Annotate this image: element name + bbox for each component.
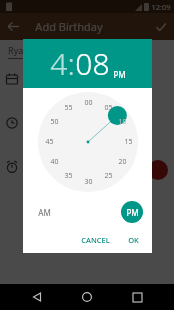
staticText: 10	[118, 117, 127, 127]
button[interactable]: Back	[24, 284, 50, 310]
staticText: 25	[104, 171, 113, 181]
other: Time	[6, 117, 18, 129]
staticText: AM	[38, 207, 51, 218]
button[interactable]: Time	[6, 115, 174, 131]
staticText: PM	[113, 69, 126, 80]
staticText: 08	[75, 43, 110, 84]
button[interactable]: Date	[6, 71, 174, 87]
button[interactable]: Alarm	[6, 159, 174, 175]
button[interactable]: Save	[147, 13, 174, 40]
staticText: OK	[128, 235, 139, 245]
button[interactable]: PM	[121, 201, 143, 223]
staticText: Ryan	[8, 44, 29, 56]
staticText: 45	[45, 137, 54, 147]
other: Date	[6, 73, 18, 85]
button[interactable]: Home	[74, 284, 100, 310]
staticText: 40	[50, 157, 59, 167]
staticText: Add Birthday	[35, 19, 103, 34]
other: Alarm	[6, 161, 18, 173]
staticText: 30	[84, 177, 93, 187]
button[interactable]: 08	[75, 43, 110, 84]
button[interactable]: Add	[148, 160, 168, 180]
button[interactable]: Back	[0, 13, 27, 40]
staticText: 12:09	[151, 2, 171, 12]
staticText: 4:	[50, 43, 75, 84]
staticText: 05	[104, 103, 113, 113]
button[interactable]: Recents	[124, 284, 150, 310]
staticText: 00	[84, 98, 93, 108]
button[interactable]: AM	[33, 201, 55, 223]
staticText: 20	[118, 157, 127, 167]
staticText: 15	[124, 137, 133, 147]
staticText: PM	[126, 207, 139, 218]
staticText: CANCEL	[81, 235, 110, 245]
staticText: 50	[50, 117, 59, 127]
button[interactable]: OK	[123, 232, 144, 248]
button[interactable]: 4:	[50, 43, 75, 84]
button[interactable]: CANCEL	[76, 232, 115, 248]
staticText: 35	[64, 171, 73, 181]
staticText: 55	[64, 103, 73, 113]
